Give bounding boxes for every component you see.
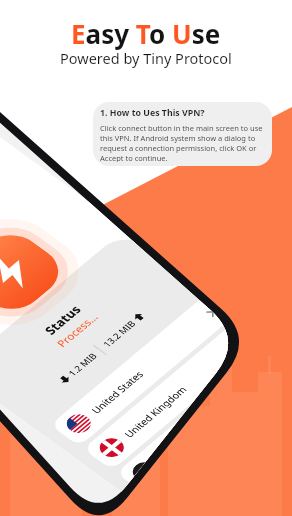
button[interactable]: 1. How to Ues This VPN? [93, 102, 272, 166]
staticText: United States [88, 312, 213, 416]
staticText: United Kingdom [121, 336, 246, 440]
staticText: Click connect button in the main screen … [100, 123, 266, 162]
button[interactable]: United Kingdom [83, 319, 267, 470]
staticText: Powered by Tiny Protocol [60, 48, 232, 68]
staticText: 13.2 MIB [100, 318, 139, 349]
staticText: Germany [154, 360, 279, 464]
staticText: 1. How to Ues This VPN? [100, 107, 205, 119]
staticText: 1.2 MIB [65, 350, 100, 378]
button[interactable]: United States [50, 295, 234, 446]
button[interactable]: Connect [0, 225, 72, 319]
staticText: Status [40, 302, 85, 338]
button[interactable]: Germany [116, 343, 292, 494]
staticText: Process... [53, 311, 101, 349]
staticText: Easy To Use [71, 16, 221, 51]
